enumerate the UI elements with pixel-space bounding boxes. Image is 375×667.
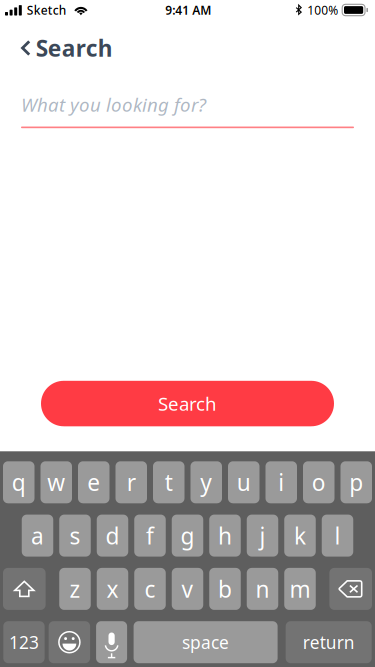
button[interactable]: v (172, 568, 203, 610)
staticText: f (146, 520, 154, 551)
staticText: y (200, 467, 212, 497)
staticText: What you looking for? (21, 92, 206, 117)
button[interactable]: z (59, 568, 91, 610)
button[interactable]: e (78, 461, 109, 503)
button[interactable]: t (153, 461, 184, 503)
button[interactable]: w (40, 461, 72, 503)
button[interactable]: i (265, 461, 297, 503)
staticText: k (294, 520, 306, 551)
staticText: b (218, 574, 232, 604)
button[interactable]: r (115, 461, 147, 503)
staticText: h (218, 520, 232, 551)
staticText: e (87, 467, 100, 497)
button[interactable]: y (190, 461, 222, 503)
button[interactable]: k (284, 515, 316, 557)
button[interactable]: Delete (329, 568, 372, 610)
staticText: i (278, 467, 284, 497)
staticText: x (106, 574, 118, 604)
button[interactable]: space (134, 621, 278, 663)
button[interactable]: n (247, 568, 278, 610)
staticText: m (289, 574, 310, 604)
staticText: return (303, 631, 355, 654)
staticText: r (127, 467, 136, 497)
staticText: 100% (307, 2, 338, 18)
staticText: v (181, 574, 193, 604)
button[interactable]: a (22, 515, 53, 557)
button[interactable]: Emoji (49, 621, 90, 663)
button[interactable]: f (134, 515, 166, 557)
button[interactable]: c (134, 568, 166, 610)
staticText: d (105, 520, 119, 551)
button[interactable]: u (228, 461, 259, 503)
button[interactable]: j (247, 515, 278, 557)
button[interactable]: b (209, 568, 241, 610)
button[interactable]: h (209, 515, 241, 557)
button[interactable]: Search (0, 20, 123, 68)
button[interactable]: o (303, 461, 334, 503)
staticText: s (69, 520, 80, 551)
staticText: g (180, 520, 194, 551)
staticText: Search (36, 33, 113, 63)
button[interactable]: d (97, 515, 128, 557)
staticText: q (12, 467, 26, 497)
staticText: a (31, 520, 44, 551)
button[interactable]: q (3, 461, 34, 503)
button[interactable]: s (59, 515, 91, 557)
button[interactable]: Search (41, 381, 334, 426)
button[interactable]: Shift (3, 568, 46, 610)
button[interactable]: Dictate (96, 621, 127, 663)
staticText: 9:41 AM (165, 2, 211, 18)
staticText: z (69, 574, 80, 604)
button[interactable]: l (322, 515, 353, 557)
staticText: w (47, 467, 65, 497)
button[interactable]: return (286, 621, 372, 663)
staticText: Search (158, 391, 217, 416)
staticText: o (312, 467, 326, 497)
staticText: u (237, 467, 251, 497)
staticText: space (182, 631, 229, 654)
staticText: t (165, 467, 173, 497)
staticText: p (349, 467, 363, 497)
button[interactable]: x (97, 568, 128, 610)
staticText: n (255, 574, 269, 604)
button[interactable]: g (172, 515, 203, 557)
staticText: c (144, 574, 155, 604)
button[interactable]: 123 (3, 621, 45, 663)
staticText: 123 (9, 631, 39, 654)
staticText: l (334, 520, 340, 551)
button[interactable]: m (284, 568, 316, 610)
button[interactable]: p (340, 461, 372, 503)
staticText: Sketch (27, 2, 67, 18)
staticText: j (259, 520, 265, 551)
